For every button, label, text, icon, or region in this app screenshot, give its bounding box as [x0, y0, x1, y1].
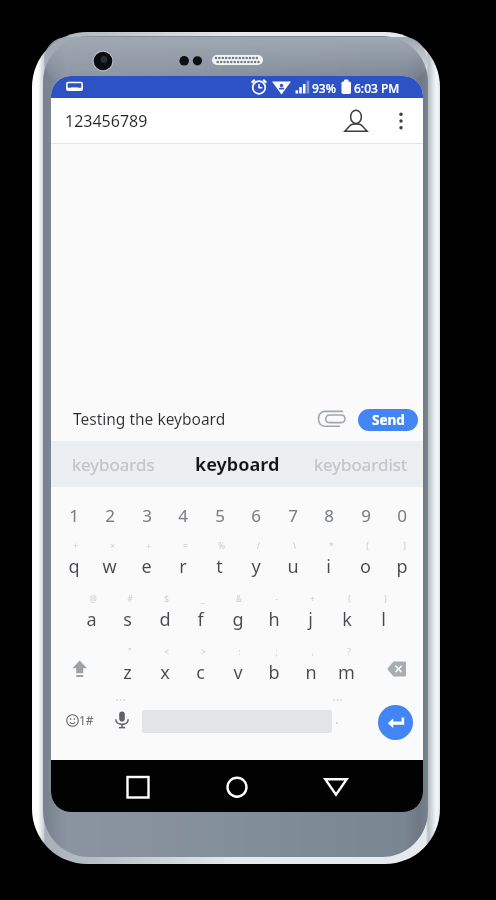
- button[interactable]: s: [109, 595, 146, 643]
- staticText: =: [183, 540, 188, 551]
- button[interactable]: 9: [347, 491, 384, 539]
- staticText: /: [257, 540, 260, 551]
- button[interactable]: Shift: [61, 646, 99, 690]
- button[interactable]: d: [146, 595, 183, 643]
- staticText: keyboard: [195, 452, 280, 477]
- button[interactable]: t: [201, 542, 238, 590]
- staticText: >: [201, 646, 206, 657]
- staticText: d: [159, 607, 171, 632]
- staticText: 4: [178, 504, 188, 527]
- button[interactable]: 1: [55, 491, 92, 539]
- button[interactable]: q: [55, 542, 92, 590]
- button[interactable]: 4: [164, 491, 201, 539]
- button[interactable]: Home: [215, 765, 259, 809]
- staticText: ]: [403, 540, 406, 551]
- button[interactable]: 8: [310, 491, 347, 539]
- staticText: ": [128, 646, 132, 657]
- staticText: j: [308, 607, 313, 632]
- staticText: +: [310, 593, 315, 604]
- staticText: v: [233, 660, 243, 685]
- staticText: w: [102, 554, 117, 579]
- staticText: e: [141, 554, 152, 579]
- button[interactable]: j: [292, 595, 329, 643]
- staticText: ÷: [146, 540, 151, 551]
- staticText: :: [238, 646, 241, 657]
- button[interactable]: z: [109, 648, 146, 696]
- staticText: 6:03 PM: [354, 80, 400, 96]
- staticText: o: [360, 554, 371, 579]
- button[interactable]: Backspace: [376, 646, 416, 690]
- staticText: 7: [288, 504, 298, 527]
- button[interactable]: h: [255, 595, 292, 643]
- button[interactable]: o: [347, 542, 384, 590]
- staticText: (: [348, 593, 351, 604]
- staticText: <: [164, 646, 169, 657]
- button[interactable]: u: [274, 542, 311, 590]
- staticText: Send: [372, 411, 405, 429]
- button[interactable]: w: [91, 542, 128, 590]
- staticText: ?: [347, 646, 351, 657]
- staticText: 1: [69, 504, 79, 527]
- button[interactable]: Voice input: [105, 703, 139, 737]
- staticText: p: [396, 554, 408, 579]
- button[interactable]: p: [383, 542, 420, 590]
- button[interactable]: keyboard: [175, 441, 299, 487]
- button[interactable]: Send: [358, 409, 418, 431]
- staticText: Testing the keyboard: [73, 408, 226, 429]
- staticText: t: [216, 554, 223, 579]
- staticText: n: [305, 660, 317, 685]
- staticText: \: [293, 540, 296, 551]
- staticText: keyboardist: [314, 453, 408, 476]
- button[interactable]: v: [219, 648, 256, 696]
- staticText: 93%: [312, 80, 336, 96]
- staticText: _: [201, 593, 205, 604]
- staticText: y: [251, 554, 261, 579]
- button[interactable]: 0: [383, 491, 420, 539]
- button[interactable]: Enter: [378, 705, 413, 740]
- button[interactable]: f: [182, 595, 219, 643]
- staticText: %: [218, 540, 225, 551]
- button[interactable]: x: [146, 648, 183, 696]
- button[interactable]: keyboards: [51, 441, 175, 487]
- button[interactable]: e: [128, 542, 165, 590]
- button[interactable]: k: [328, 595, 365, 643]
- staticText: 3: [142, 504, 152, 527]
- button[interactable]: Back: [314, 765, 358, 809]
- staticText: s: [123, 607, 132, 632]
- staticText: 1#: [79, 712, 94, 728]
- button[interactable]: m: [328, 648, 365, 696]
- staticText: -: [275, 593, 278, 604]
- staticText: i: [326, 554, 331, 579]
- button[interactable]: 5: [201, 491, 238, 539]
- staticText: z: [123, 660, 132, 685]
- staticText: 6: [251, 504, 261, 527]
- staticText: l: [381, 607, 386, 632]
- button[interactable]: i: [310, 542, 347, 590]
- button[interactable]: 2: [91, 491, 128, 539]
- button[interactable]: 7: [274, 491, 311, 539]
- staticText: g: [232, 607, 244, 632]
- button[interactable]: Recent apps: [116, 765, 160, 809]
- button[interactable]: 1#: [58, 704, 102, 736]
- staticText: ;: [275, 646, 278, 657]
- button[interactable]: r: [164, 542, 201, 590]
- button[interactable]: a: [73, 595, 110, 643]
- staticText: 123456789: [65, 110, 148, 132]
- button[interactable]: y: [237, 542, 274, 590]
- button[interactable]: Attach: [308, 402, 354, 435]
- staticText: *: [329, 540, 334, 551]
- staticText: q: [68, 554, 80, 579]
- button[interactable]: n: [292, 648, 329, 696]
- button[interactable]: 3: [128, 491, 165, 539]
- staticText: r: [179, 554, 187, 579]
- button[interactable]: Contact: [333, 98, 379, 144]
- button[interactable]: 6: [237, 491, 274, 539]
- button[interactable]: l: [365, 595, 402, 643]
- staticText: c: [196, 660, 205, 685]
- button[interactable]: c: [182, 648, 219, 696]
- button[interactable]: b: [255, 648, 292, 696]
- button[interactable]: keyboardist: [299, 441, 423, 487]
- button[interactable]: g: [219, 595, 256, 643]
- button[interactable]: More options: [381, 101, 421, 141]
